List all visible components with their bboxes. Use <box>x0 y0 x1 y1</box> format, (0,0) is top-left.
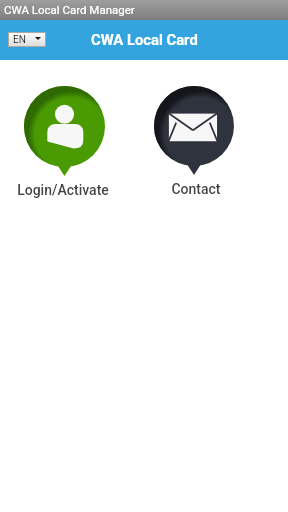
staticText: Contact <box>171 181 221 197</box>
staticText: Login/Activate <box>17 182 109 198</box>
staticText: CWA Local Card <box>91 31 198 48</box>
staticText: EN <box>13 34 26 46</box>
button[interactable]: Contact <box>140 86 248 197</box>
button[interactable]: Login/Activate <box>10 86 119 198</box>
staticText: CWA Local Card Manager <box>4 3 135 16</box>
button[interactable]: Language: EN <box>9 33 45 46</box>
